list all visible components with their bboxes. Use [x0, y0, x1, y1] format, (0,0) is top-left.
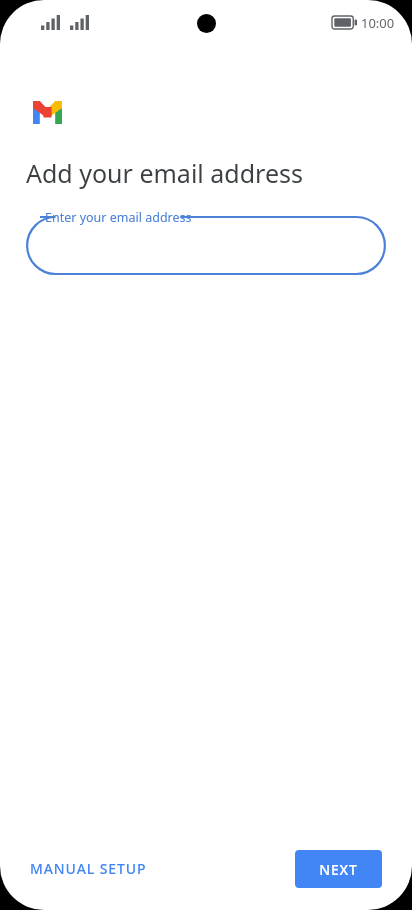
staticText: Add your email address [26, 156, 303, 190]
button[interactable]: NEXT [295, 850, 382, 888]
staticText: Enter your email address [45, 209, 192, 226]
button[interactable]: Enter your email address [26, 207, 386, 275]
staticText: 10:00 [361, 14, 395, 32]
staticText: MANUAL SETUP [30, 859, 147, 878]
staticText: NEXT [319, 860, 358, 879]
button[interactable]: MANUAL SETUP [14, 849, 163, 888]
